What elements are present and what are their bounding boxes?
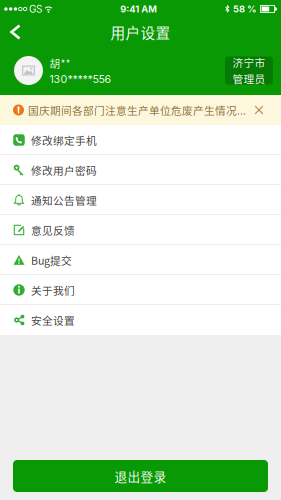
staticText: 国庆期间各部门注意生产单位危废产生情况...	[28, 102, 246, 118]
staticText: 关于我们	[31, 282, 75, 298]
staticText: 胡**	[49, 55, 70, 71]
button[interactable]: 意见反馈	[0, 215, 281, 245]
button[interactable]: 济宁市	[225, 56, 273, 84]
staticText: GS	[29, 3, 42, 15]
button[interactable]: Close notice	[248, 99, 270, 121]
staticText: 9:41 AM	[120, 3, 157, 15]
staticText: 安全设置	[31, 312, 75, 328]
button[interactable]: 关于我们	[0, 275, 281, 305]
staticText: 修改用户密码	[31, 162, 97, 178]
button[interactable]: Bug提交	[0, 245, 281, 275]
staticText: 通知公告管理	[31, 192, 97, 208]
staticText: 意见反馈	[31, 222, 75, 238]
button[interactable]: 退出登录	[13, 460, 268, 492]
staticText: 济宁市	[232, 55, 265, 70]
button[interactable]: 安全设置	[0, 305, 281, 335]
button[interactable]: 胡**	[14, 55, 111, 86]
button[interactable]: 修改绑定手机	[0, 125, 281, 155]
staticText: 管理员	[232, 71, 265, 86]
staticText: 58 %	[233, 3, 256, 15]
staticText: 130*****556	[49, 73, 111, 86]
staticText: 退出登录	[114, 467, 166, 485]
staticText: 修改绑定手机	[31, 132, 97, 148]
staticText: 用户设置	[110, 21, 170, 43]
button[interactable]: 修改用户密码	[0, 155, 281, 185]
staticText: Bug提交	[31, 252, 72, 268]
button[interactable]: 通知公告管理	[0, 185, 281, 215]
button[interactable]: Back	[0, 18, 31, 46]
